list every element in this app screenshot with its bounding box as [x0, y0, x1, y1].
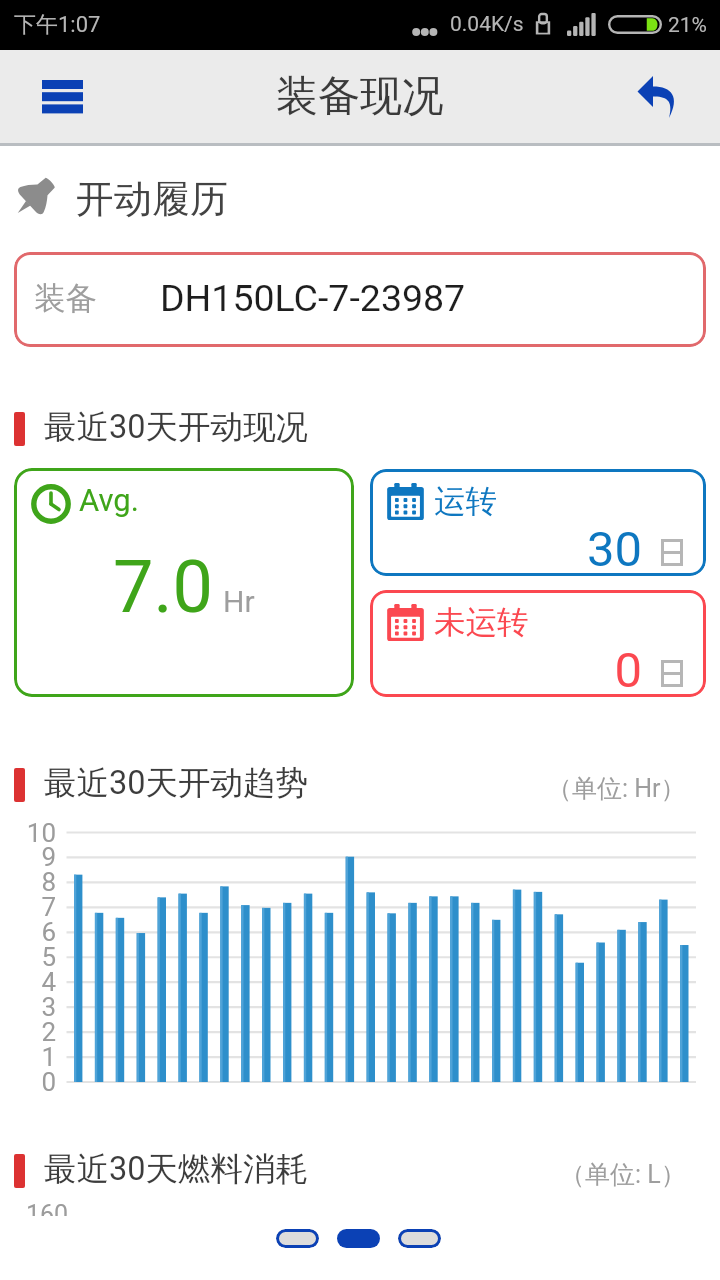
- staticText: 21%: [668, 13, 707, 38]
- button[interactable]: 装备: [14, 252, 706, 347]
- staticText: 开动履历: [76, 175, 228, 223]
- button[interactable]: Back: [604, 50, 714, 143]
- staticText: 30: [462, 521, 642, 576]
- button[interactable]: 运转: [370, 469, 706, 576]
- staticText: 3: [8, 992, 56, 1022]
- staticText: 7.0: [113, 545, 213, 629]
- staticText: DH150LC-7-23987: [160, 276, 466, 320]
- staticText: 10: [8, 818, 56, 848]
- staticText: 未运转: [434, 603, 529, 643]
- staticText: 装备: [34, 279, 97, 319]
- staticText: 下午1:07: [14, 11, 101, 39]
- staticText: 2: [8, 1017, 56, 1047]
- staticText: 5: [8, 942, 56, 972]
- staticText: 8: [8, 867, 56, 897]
- button[interactable]: 未运转: [370, 590, 706, 697]
- staticText: 7: [8, 892, 56, 922]
- button[interactable]: Page 2 selected: [337, 1229, 380, 1248]
- button[interactable]: Page: [398, 1229, 441, 1248]
- staticText: 6: [8, 917, 56, 947]
- staticText: （单位: L）: [560, 1159, 686, 1190]
- staticText: 最近30天燃料消耗: [44, 1149, 309, 1190]
- staticText: 4: [8, 967, 56, 997]
- staticText: 最近30天开动趋势: [44, 763, 309, 804]
- staticText: 9: [8, 842, 56, 872]
- staticText: 0: [462, 642, 642, 697]
- staticText: Hr: [223, 584, 255, 619]
- staticText: （单位: Hr）: [547, 773, 686, 804]
- staticText: 0: [8, 1067, 56, 1097]
- button[interactable]: Page: [276, 1229, 319, 1248]
- staticText: 装备现况: [276, 70, 444, 123]
- staticText: 运转: [434, 482, 497, 522]
- staticText: Avg.: [79, 482, 139, 518]
- staticText: 最近30天开动现况: [44, 407, 309, 448]
- staticText: 1: [8, 1042, 56, 1072]
- staticText: 160: [26, 1200, 69, 1229]
- button[interactable]: Menu: [8, 50, 116, 143]
- button[interactable]: Avg.: [14, 468, 354, 697]
- staticText: 0.04K/s: [450, 12, 524, 37]
